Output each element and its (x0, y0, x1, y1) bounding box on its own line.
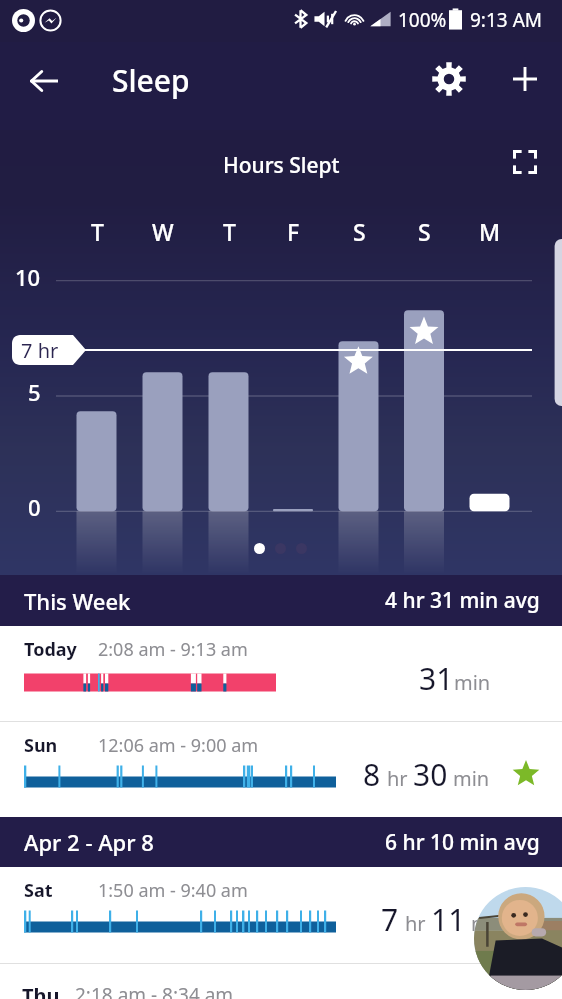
staticText: T (223, 216, 236, 246)
button[interactable]: This Week (0, 575, 562, 626)
staticText: S (418, 216, 431, 246)
staticText: M (479, 216, 501, 246)
button[interactable]: Apr 2 - Apr 8 (0, 817, 562, 867)
staticText: Apr 2 - Apr 8 (24, 827, 154, 857)
staticText: 11 (431, 899, 466, 940)
staticText: W (152, 216, 174, 246)
staticText: 4 hr 31 min avg (385, 586, 540, 615)
button[interactable]: Add (499, 53, 551, 105)
staticText: Hours Slept (223, 151, 340, 180)
staticText: This Week (24, 586, 131, 616)
button[interactable]: Thu (0, 964, 562, 999)
staticText: 100% (398, 7, 447, 33)
staticText: 10 (15, 262, 41, 292)
staticText: min (454, 669, 491, 696)
staticText: S (353, 216, 366, 246)
staticText: 5 (28, 377, 41, 407)
staticText: 30 (413, 754, 448, 795)
button[interactable]: Open chat (474, 887, 562, 990)
button[interactable]: Fullscreen (505, 142, 545, 182)
button[interactable]: Settings (423, 53, 475, 105)
staticText: Sun (24, 733, 58, 758)
staticText: min (453, 765, 490, 792)
staticText: 0 (28, 492, 41, 522)
staticText: T (91, 216, 104, 246)
staticText: hr (387, 765, 408, 792)
staticText: 1:50 am - 9:40 am (98, 878, 248, 903)
staticText: 8 (363, 754, 381, 795)
button[interactable]: Sat (0, 867, 562, 963)
staticText: Today (24, 637, 77, 662)
staticText: F (287, 216, 300, 246)
staticText: Thu (22, 982, 60, 999)
staticText: min (471, 910, 508, 937)
staticText: 12:06 am - 9:00 am (98, 733, 259, 758)
staticText: 7 (381, 899, 399, 940)
staticText: 31 (419, 658, 454, 699)
staticText: Sleep (112, 60, 190, 101)
staticText: 2:18 am - 8:34 am (75, 982, 234, 999)
staticText: 9:13 AM (470, 7, 543, 33)
button[interactable]: Sun (0, 722, 562, 817)
button[interactable]: Back (18, 55, 70, 107)
staticText: hr (405, 910, 426, 937)
staticText: 6 hr 10 min avg (385, 828, 540, 857)
staticText: 7 hr (21, 337, 59, 364)
staticText: 2:08 am - 9:13 am (98, 637, 248, 662)
button[interactable]: Today (0, 626, 562, 721)
staticText: Sat (24, 878, 53, 903)
